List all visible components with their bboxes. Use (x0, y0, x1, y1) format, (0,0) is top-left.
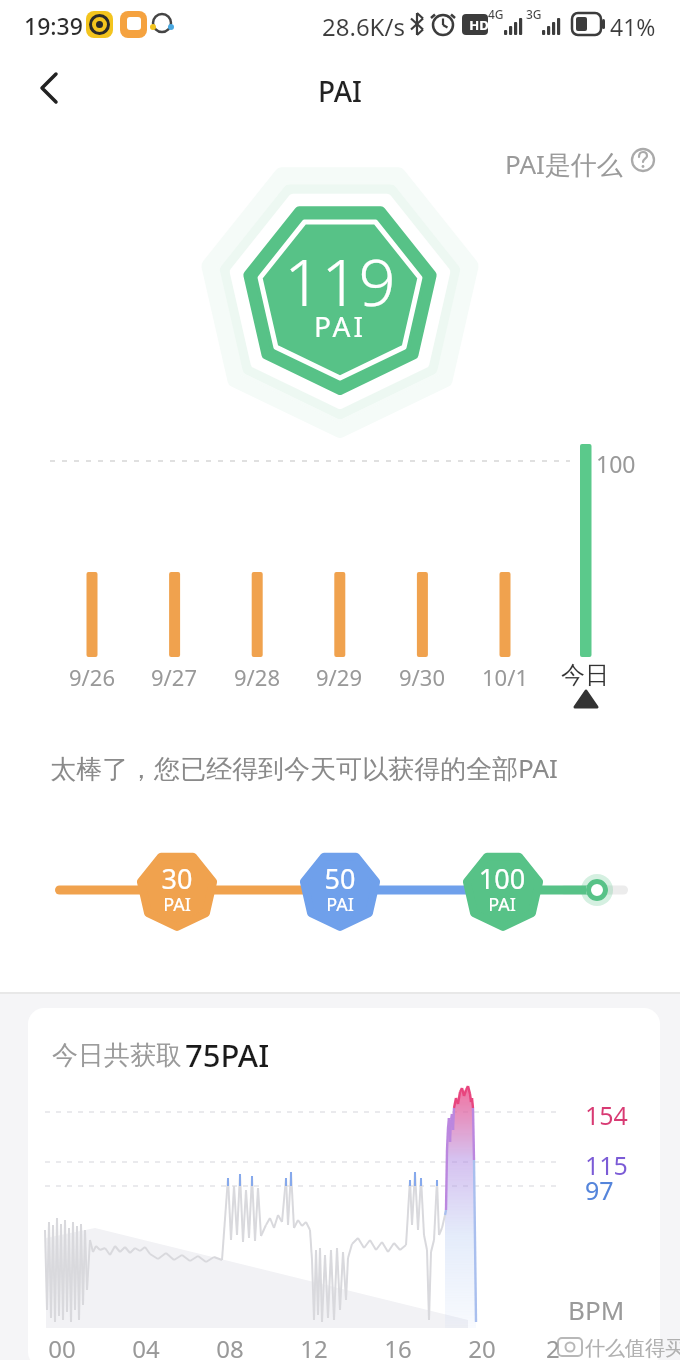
staticText: 今日共获取 (52, 1039, 252, 1072)
staticText: 2 (546, 1332, 576, 1360)
staticText: 9/30 (382, 662, 462, 692)
staticText: 什么值得买 (585, 1336, 680, 1360)
staticText: 04 (118, 1332, 174, 1360)
staticText: 30 (137, 860, 217, 897)
staticText: PAI (300, 892, 380, 917)
staticText: PAI (240, 72, 440, 110)
staticText: 4G (488, 6, 512, 22)
staticText: 00 (34, 1332, 90, 1360)
staticText: 3G (526, 6, 550, 22)
staticText: 9/27 (134, 662, 214, 692)
staticText: 100 (462, 860, 542, 897)
staticText: PAI (462, 892, 542, 917)
staticText: 今日 (545, 660, 625, 690)
staticText: 100 (596, 448, 666, 479)
staticText: BPM (568, 1292, 648, 1327)
staticText: 119 (240, 237, 440, 326)
staticText: 115 (585, 1148, 665, 1182)
staticText: PAI (137, 892, 217, 917)
staticText: HD (464, 16, 494, 34)
staticText: 08 (202, 1332, 258, 1360)
staticText: 16 (370, 1332, 426, 1360)
staticText: 10/1 (465, 662, 545, 692)
staticText: 19:39 (24, 10, 104, 41)
staticText: 9/29 (299, 662, 379, 692)
staticText: 41% (610, 11, 670, 42)
staticText: 9/28 (217, 662, 297, 692)
staticText: 50 (300, 860, 380, 897)
staticText: 75PAI (185, 1034, 385, 1076)
staticText: PAI (240, 307, 440, 345)
staticText: 97 (585, 1173, 665, 1207)
staticText: 28.6K/s (322, 10, 412, 43)
button[interactable] (500, 140, 660, 180)
button[interactable] (24, 60, 76, 112)
staticText: 12 (286, 1332, 342, 1360)
staticText: 20 (454, 1332, 510, 1360)
staticText: 154 (585, 1098, 665, 1132)
staticText: 9/26 (52, 662, 132, 692)
staticText: 太棒了，您已经得到今天可以获得的全部PAI (50, 750, 650, 786)
staticText: PAI是什么 (505, 146, 625, 182)
